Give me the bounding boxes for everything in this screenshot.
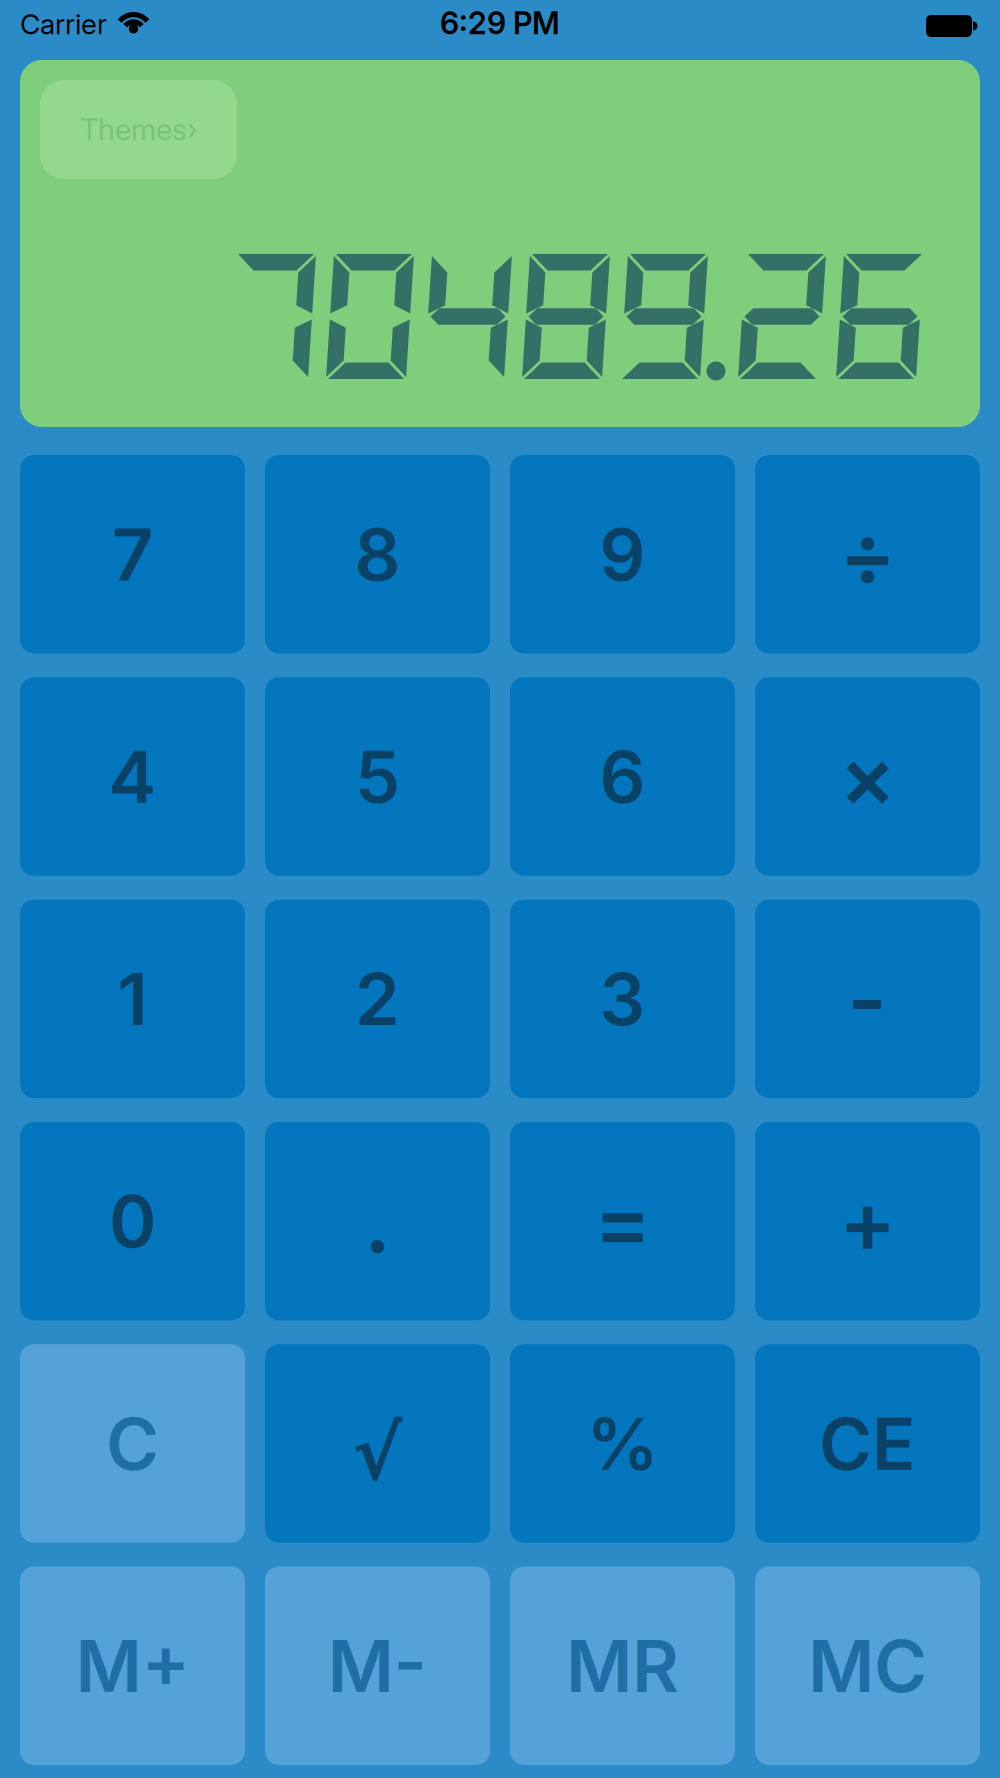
staticText: 6:29 PM — [440, 4, 560, 41]
button[interactable]: C — [20, 1344, 245, 1543]
staticText: 9 — [599, 511, 645, 598]
button[interactable]: . — [265, 1122, 490, 1320]
staticText: + — [839, 1169, 896, 1273]
button[interactable]: MR — [510, 1566, 735, 1765]
button[interactable]: × — [755, 677, 980, 876]
button[interactable]: 7 — [20, 455, 245, 653]
staticText: 5 — [355, 733, 400, 820]
staticText: . — [364, 1169, 391, 1273]
staticText: C — [106, 1400, 159, 1487]
button[interactable]: Themes› — [40, 80, 237, 179]
button[interactable]: MC — [755, 1566, 980, 1765]
button[interactable]: 9 — [510, 455, 735, 653]
button[interactable]: 1 — [20, 900, 245, 1098]
button[interactable]: M+ — [20, 1566, 245, 1765]
button[interactable]: - — [755, 900, 980, 1098]
button[interactable]: 6 — [510, 677, 735, 876]
staticText: 2 — [355, 955, 400, 1042]
staticText: M- — [327, 1622, 427, 1709]
button[interactable]: 4 — [20, 677, 245, 876]
button[interactable]: CE — [755, 1344, 980, 1543]
button[interactable]: 8 — [265, 455, 490, 653]
staticText: MR — [566, 1622, 679, 1709]
button[interactable]: √ — [265, 1344, 490, 1543]
staticText: = — [594, 1169, 651, 1273]
button[interactable]: ÷ — [755, 455, 980, 653]
button[interactable]: = — [510, 1122, 735, 1320]
staticText: × — [839, 725, 896, 828]
staticText: 8 — [354, 511, 400, 598]
button[interactable]: 3 — [510, 900, 735, 1098]
button[interactable]: 2 — [265, 900, 490, 1098]
staticText: 0 — [109, 1178, 156, 1265]
staticText: √ — [352, 1411, 402, 1496]
staticText: 3 — [599, 955, 645, 1042]
staticText: 7 — [112, 511, 153, 598]
staticText: Themes› — [80, 112, 197, 147]
staticText: 6 — [599, 733, 645, 820]
staticText: ÷ — [839, 503, 896, 606]
staticText: MC — [808, 1622, 927, 1709]
staticText: Carrier — [20, 7, 107, 41]
button[interactable]: 5 — [265, 677, 490, 876]
staticText: % — [586, 1400, 658, 1487]
button[interactable]: 0 — [20, 1122, 245, 1320]
staticText: CE — [819, 1400, 916, 1487]
staticText: 4 — [108, 733, 156, 820]
staticText: - — [847, 947, 887, 1050]
button[interactable]: + — [755, 1122, 980, 1320]
button[interactable]: M- — [265, 1566, 490, 1765]
staticText: M+ — [75, 1622, 189, 1709]
staticText: 1 — [117, 955, 147, 1042]
button[interactable]: % — [510, 1344, 735, 1543]
